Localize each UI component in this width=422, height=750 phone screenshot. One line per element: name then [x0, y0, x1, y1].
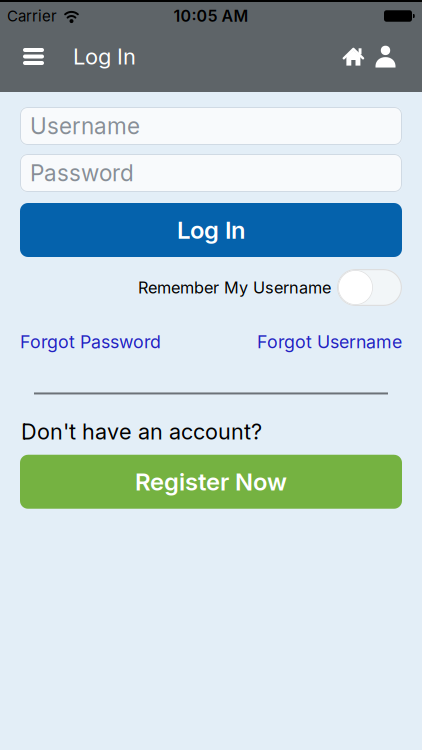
button[interactable]: Menu — [0, 48, 54, 65]
staticText: Log In — [177, 215, 245, 244]
staticText: Forgot Password — [20, 331, 161, 352]
staticText: Forgot Username — [257, 331, 402, 352]
button[interactable]: Remember My Username — [337, 269, 402, 306]
staticText: Remember My Username — [138, 278, 331, 297]
textField[interactable]: Password — [20, 159, 134, 187]
button[interactable]: Forgot Password — [20, 331, 161, 352]
staticText: Register Now — [135, 467, 287, 496]
staticText: Don't have an account? — [21, 418, 262, 445]
staticText: Password — [30, 159, 134, 187]
staticText: Username — [30, 112, 140, 140]
button[interactable]: Home — [343, 47, 364, 66]
staticText: Log In — [73, 43, 136, 70]
staticText: 10:05 AM — [173, 6, 248, 26]
button[interactable]: Log In — [20, 203, 402, 257]
button[interactable]: Profile — [364, 45, 422, 67]
button[interactable]: Register Now — [20, 455, 402, 509]
textField[interactable]: Username — [20, 112, 140, 140]
staticText: Carrier — [7, 7, 57, 25]
button[interactable]: Forgot Username — [257, 331, 402, 352]
